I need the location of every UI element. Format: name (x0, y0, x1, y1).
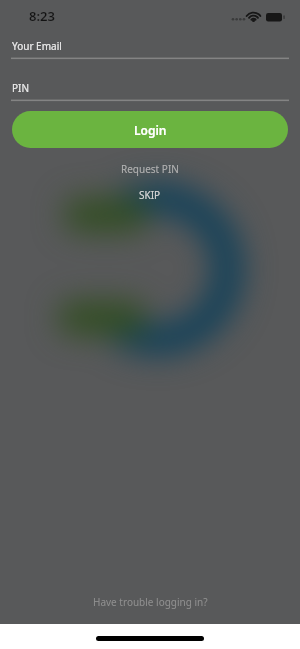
button[interactable]: PIN (0, 76, 300, 100)
staticText: Login (134, 122, 167, 138)
staticText: SKIP (139, 188, 161, 202)
button[interactable]: Your Email (0, 34, 300, 58)
button[interactable]: SKIP (0, 186, 300, 204)
button[interactable]: Have trouble logging in? (0, 593, 300, 611)
staticText: Have trouble logging in? (93, 595, 208, 609)
staticText: 8:23 (29, 7, 55, 25)
staticText: PIN (12, 81, 30, 95)
button[interactable]: Login (12, 111, 288, 148)
staticText: Request PIN (121, 162, 179, 176)
button[interactable]: Request PIN (0, 160, 300, 178)
staticText: Your Email (12, 39, 62, 53)
